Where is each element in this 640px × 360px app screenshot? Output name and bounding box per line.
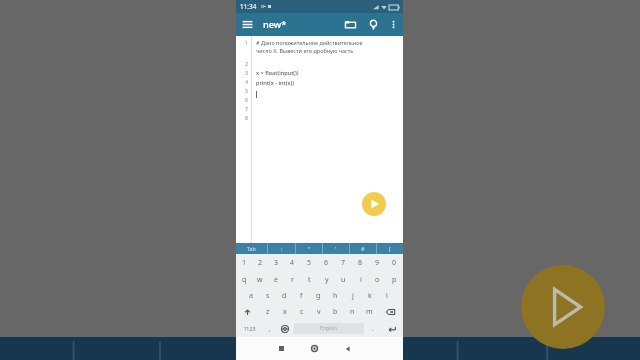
button[interactable]: o [369, 271, 386, 288]
staticText: i [360, 275, 362, 285]
button[interactable]: 9 [369, 254, 386, 271]
button[interactable]: 1 [236, 254, 252, 271]
staticText: t [308, 275, 311, 285]
staticText: 4 [245, 78, 249, 85]
staticText: Tab [247, 245, 256, 252]
button[interactable]: ?123 [236, 320, 263, 337]
button[interactable]: m [361, 304, 378, 320]
staticText: h [333, 291, 338, 301]
staticText: ( [389, 245, 391, 253]
staticText: 9 [375, 258, 380, 268]
staticText: 6 [324, 258, 329, 268]
staticText: 2 [258, 258, 263, 268]
staticText: 11:34 [240, 2, 257, 11]
button[interactable]: Enter [380, 320, 403, 337]
button[interactable]: h [327, 288, 344, 304]
staticText: 5 [245, 87, 249, 94]
staticText: English [320, 325, 338, 332]
button[interactable]: r [284, 271, 301, 288]
staticText: ' [335, 245, 337, 253]
button[interactable]: , [263, 320, 276, 337]
button[interactable]: n [344, 304, 361, 320]
button[interactable]: More options [384, 13, 403, 36]
staticText: c [300, 307, 304, 317]
button[interactable]: 5 [301, 254, 318, 271]
button[interactable]: i [352, 271, 369, 288]
button[interactable]: j [344, 288, 361, 304]
button[interactable]: Recent apps [265, 337, 298, 360]
button[interactable]: f [293, 288, 310, 304]
button[interactable]: : [268, 243, 295, 254]
staticText: : [281, 245, 283, 253]
staticText: x [283, 307, 287, 317]
staticText: 8 [245, 114, 249, 121]
button[interactable]: 8 [352, 254, 369, 271]
button[interactable]: e [268, 271, 284, 288]
button[interactable]: q [236, 271, 252, 288]
staticText: 0 [392, 258, 397, 268]
button[interactable]: Change keyboard language [276, 320, 293, 337]
staticText: r [291, 275, 294, 285]
button[interactable]: 3 [268, 254, 284, 271]
button[interactable]: a [243, 288, 259, 304]
button[interactable]: Open file [338, 13, 362, 36]
button[interactable]: Hint [362, 13, 384, 36]
staticText: new* [263, 18, 287, 31]
staticText: " [308, 245, 311, 253]
button[interactable]: t [301, 271, 318, 288]
staticText: b [333, 307, 338, 317]
button[interactable]: 4 [284, 254, 301, 271]
button[interactable]: y [318, 271, 335, 288]
button[interactable]: b [327, 304, 344, 320]
button[interactable]: k [361, 288, 378, 304]
staticText: k [368, 291, 372, 301]
button[interactable]: l [378, 288, 395, 304]
button[interactable]: c [293, 304, 310, 320]
staticText: p [392, 275, 397, 285]
button[interactable]: d [276, 288, 293, 304]
button[interactable]: p [386, 271, 403, 288]
button[interactable]: Tab [236, 243, 267, 254]
staticText: z [266, 307, 270, 317]
button[interactable]: g [310, 288, 327, 304]
button[interactable]: Space [294, 323, 364, 334]
staticText: 1 [242, 258, 247, 268]
button[interactable]: Shift [236, 304, 259, 320]
button[interactable]: 7 [335, 254, 352, 271]
staticText: 5 [307, 258, 312, 268]
button[interactable]: Navigation menu [236, 13, 258, 36]
button[interactable]: Home [298, 337, 331, 360]
staticText: j [352, 291, 354, 301]
button[interactable]: s [259, 288, 276, 304]
button[interactable]: x [276, 304, 293, 320]
staticText: v [317, 307, 321, 317]
button[interactable]: " [296, 243, 322, 254]
staticText: s [266, 291, 270, 301]
button[interactable]: Run program [362, 192, 386, 216]
staticText: d [282, 291, 287, 301]
staticText: 7 [341, 258, 346, 268]
button[interactable]: . [365, 320, 380, 337]
button[interactable]: ( [377, 243, 403, 254]
button[interactable]: 2 [252, 254, 268, 271]
staticText: 4 [290, 258, 295, 268]
staticText: q [242, 275, 247, 285]
button[interactable]: 0 [386, 254, 403, 271]
staticText: 6 [245, 96, 249, 103]
staticText: # Дано положительное действительное [256, 39, 363, 46]
staticText: print(x - int(x)) [256, 79, 294, 87]
staticText: u [341, 275, 346, 285]
button[interactable]: w [252, 271, 268, 288]
staticText: 7 [245, 105, 249, 112]
button[interactable]: v [310, 304, 327, 320]
button[interactable]: z [259, 304, 276, 320]
button[interactable]: ' [323, 243, 349, 254]
button[interactable]: Backspace [378, 304, 403, 320]
staticText: 2 [245, 60, 249, 67]
button[interactable]: 6 [318, 254, 335, 271]
button[interactable]: u [335, 271, 352, 288]
button[interactable]: Back [331, 337, 364, 360]
staticText: 1 [245, 39, 249, 46]
staticText: n [350, 307, 355, 317]
button[interactable]: # [350, 243, 376, 254]
